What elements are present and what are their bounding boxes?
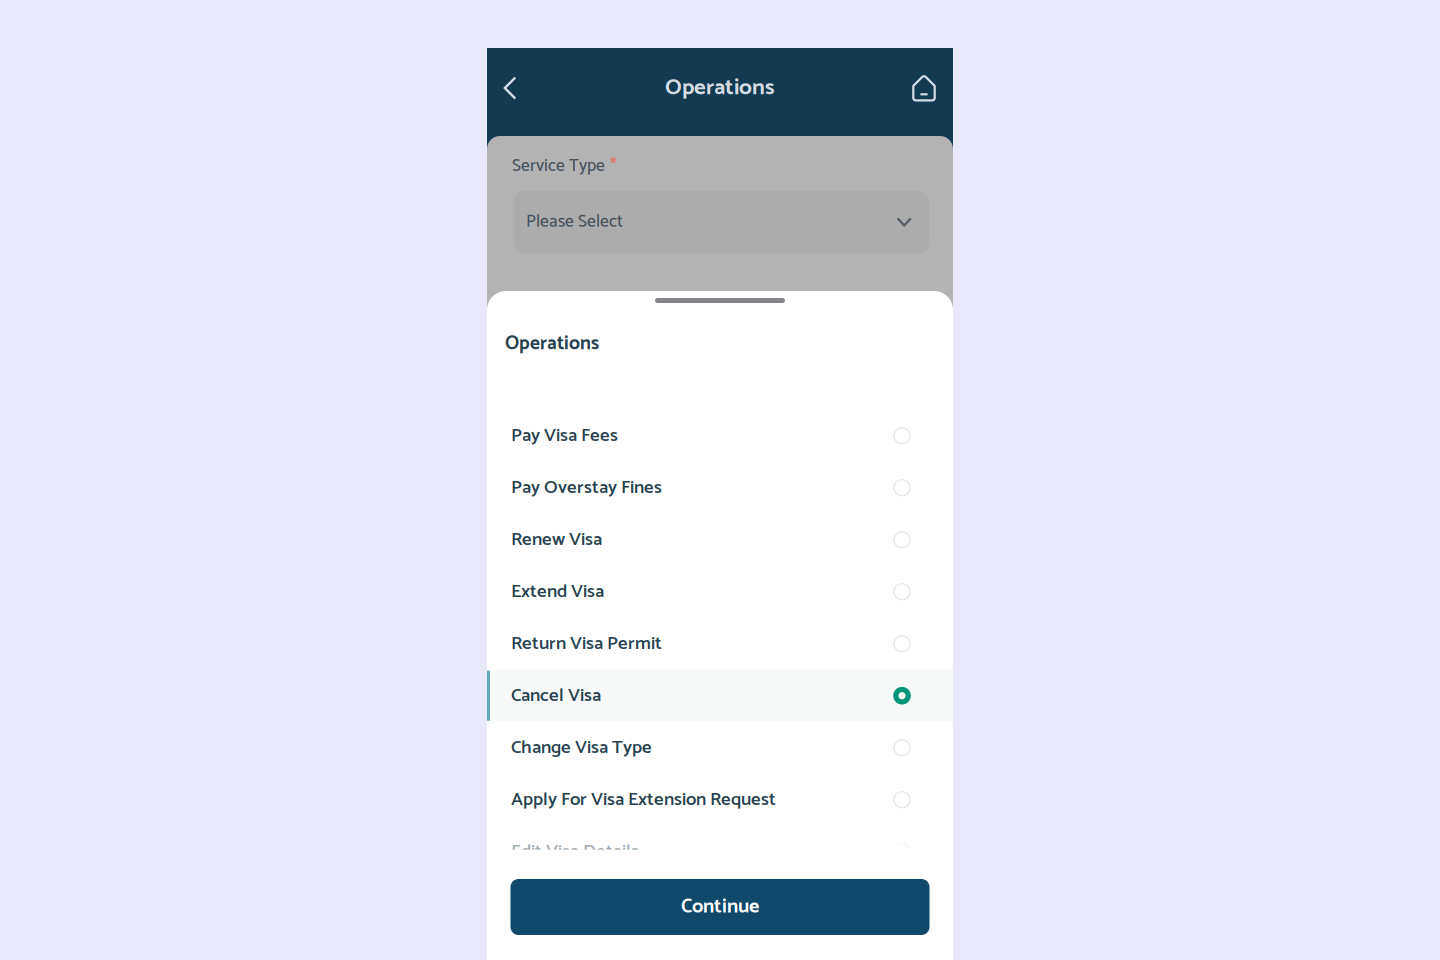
staticText: Pay Visa Fees (511, 420, 618, 451)
staticText: Operations (505, 328, 599, 360)
button[interactable]: Pay Overstay Fines (487, 462, 953, 514)
staticText: Continue (681, 891, 759, 923)
staticText: Operations (665, 69, 775, 107)
staticText: Pay Overstay Fines (511, 472, 662, 503)
button[interactable]: Extend Visa (487, 566, 953, 618)
staticText: Edit Visa Details (511, 836, 639, 867)
button[interactable]: Cancel Visa (487, 670, 953, 722)
staticText: Apply For Visa Extension Request (511, 784, 776, 815)
button[interactable]: Home (900, 66, 948, 110)
button[interactable]: Continue (510, 879, 929, 935)
button[interactable]: Change Visa Type (487, 722, 953, 774)
button[interactable]: Back (487, 66, 533, 110)
staticText: * (610, 152, 617, 180)
staticText: Return Visa Permit (511, 628, 662, 659)
staticText: Please Select (526, 208, 623, 236)
button[interactable]: Apply For Visa Extension Request (487, 774, 953, 826)
button[interactable]: Return Visa Permit (487, 618, 953, 670)
button[interactable]: Edit Visa Details (487, 826, 953, 878)
staticText: Service Type (512, 152, 605, 180)
staticText: Renew Visa (511, 524, 602, 555)
button[interactable]: Please Select (514, 190, 929, 253)
staticText: Extend Visa (511, 576, 604, 607)
staticText: Cancel Visa (511, 680, 601, 711)
staticText: Change Visa Type (511, 732, 652, 763)
button[interactable]: Renew Visa (487, 514, 953, 566)
button[interactable]: Pay Visa Fees (487, 410, 953, 462)
